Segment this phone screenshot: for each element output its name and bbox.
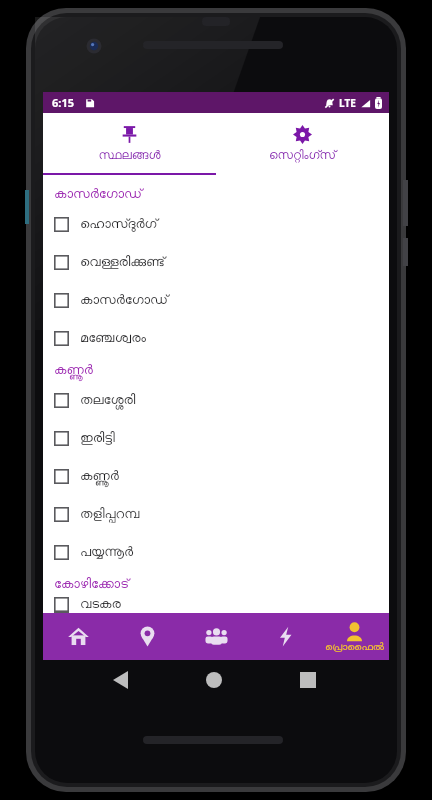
button[interactable]: Groups xyxy=(182,613,251,660)
staticText: തലശ്ശേരി xyxy=(80,394,136,407)
staticText: LTE xyxy=(339,96,356,110)
button[interactable]: ഹൊസ്ദുർഗ് xyxy=(43,205,389,243)
staticText: കണ്ണൂർ xyxy=(54,364,93,377)
button[interactable]: തളിപ്പറമ്പ xyxy=(43,495,389,533)
staticText: സ്ഥലങ്ങൾ xyxy=(98,149,161,161)
staticText: കാസർഗോഡ് xyxy=(54,188,143,201)
staticText: വടകര xyxy=(80,598,121,611)
button[interactable]: പയ്യന്നൂർ xyxy=(43,533,389,571)
button[interactable]: ഇരിട്ടി xyxy=(43,419,389,457)
button[interactable]: തലശ്ശേരി xyxy=(43,381,389,419)
staticText: പയ്യന്നൂർ xyxy=(80,546,134,559)
staticText: 6:15 xyxy=(52,95,74,110)
staticText: ഇരിട്ടി xyxy=(80,432,115,445)
staticText: മഞ്ചേശ്വരം xyxy=(80,332,147,345)
button[interactable]: കണ്ണൂർ xyxy=(43,457,389,495)
button[interactable]: മഞ്ചേശ്വരം xyxy=(43,319,389,357)
staticText: വെള്ളരിക്കുണ്ട് xyxy=(80,256,165,269)
staticText: കോഴിക്കോട് xyxy=(54,578,129,591)
staticText: പ്രൊഫൈൽ xyxy=(325,642,384,652)
button[interactable]: പ്രൊഫൈൽ xyxy=(320,613,389,660)
staticText: കണ്ണൂർ xyxy=(80,470,119,483)
staticText: കാസർഗോഡ് xyxy=(80,294,169,307)
button[interactable]: കാസർഗോഡ് xyxy=(43,281,389,319)
button[interactable]: Home xyxy=(43,613,113,660)
button[interactable]: വടകര xyxy=(43,595,389,613)
button[interactable]: സ്ഥലങ്ങൾ xyxy=(43,113,216,173)
button[interactable]: Alerts xyxy=(251,613,320,660)
staticText: ഹൊസ്ദുർഗ് xyxy=(80,218,158,231)
staticText: സെറ്റിംഗ്സ് xyxy=(269,149,336,161)
staticText: തളിപ്പറമ്പ xyxy=(80,508,140,521)
button[interactable]: Places xyxy=(113,613,182,660)
button[interactable]: സെറ്റിംഗ്സ് xyxy=(216,113,389,173)
button[interactable]: വെള്ളരിക്കുണ്ട് xyxy=(43,243,389,281)
